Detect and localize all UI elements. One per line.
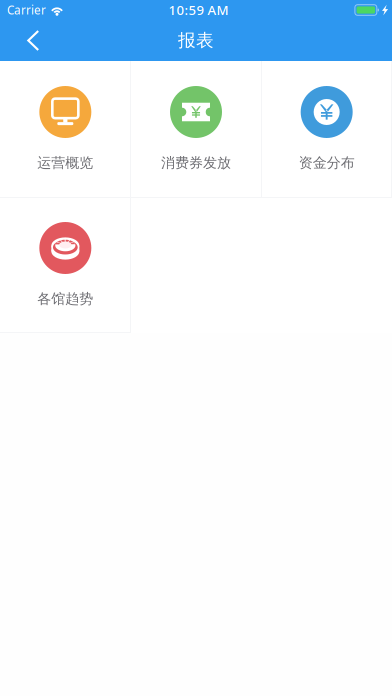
staticText: 运营概览: [37, 154, 93, 172]
staticText: 10:59 AM: [168, 1, 228, 19]
button[interactable]: 各馆趋势: [0, 197, 131, 333]
staticText: 报表: [178, 29, 214, 52]
button[interactable]: 运营概览: [0, 61, 131, 197]
button[interactable]: 消费券发放: [131, 61, 261, 197]
staticText: 消费券发放: [161, 154, 231, 172]
button[interactable]: Back: [0, 20, 50, 61]
staticText: Carrier: [7, 2, 46, 18]
staticText: 各馆趋势: [37, 290, 93, 308]
staticText: 资金分布: [299, 154, 355, 172]
button[interactable]: 资金分布: [261, 61, 392, 197]
